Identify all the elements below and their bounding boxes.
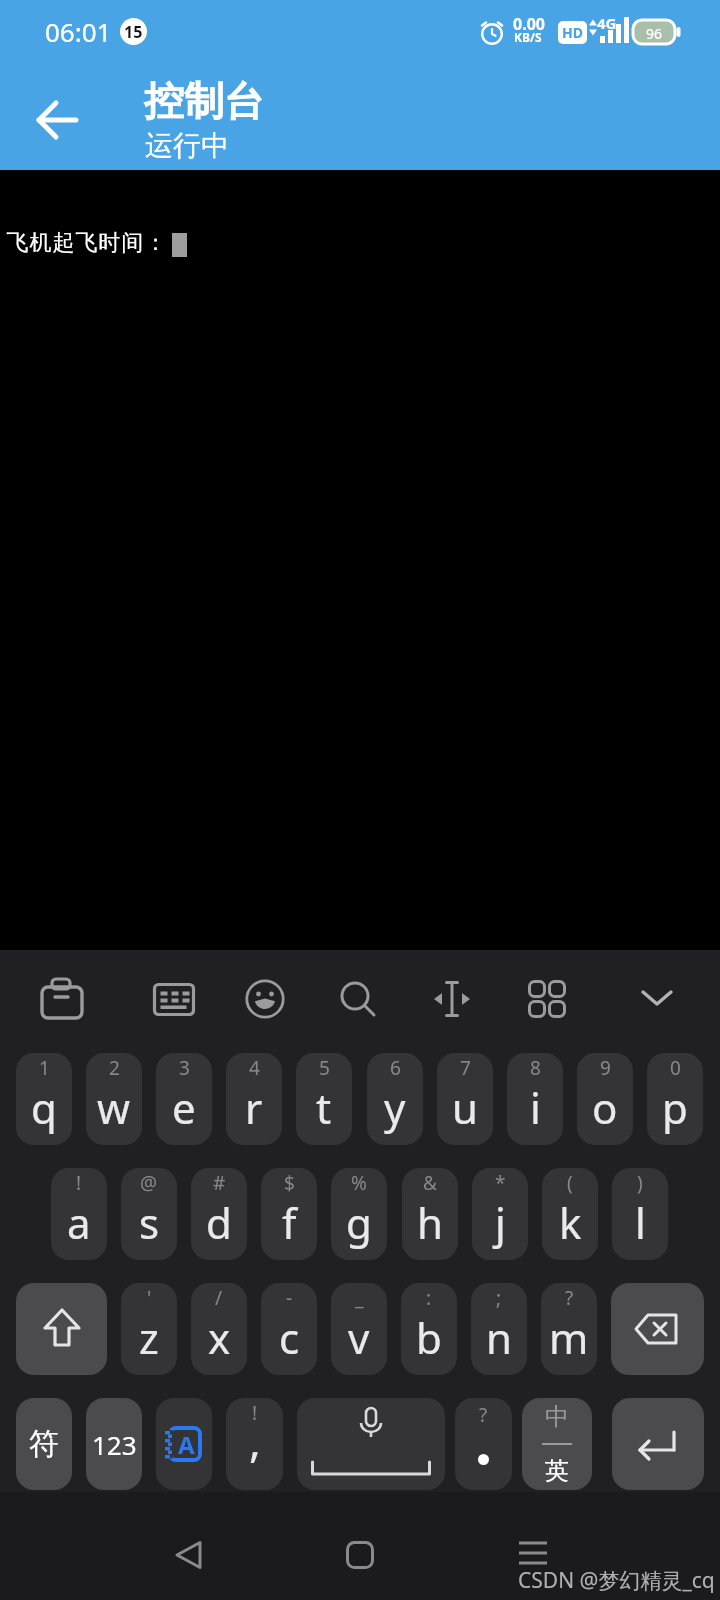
staticText: @ xyxy=(140,1170,158,1196)
staticText: u xyxy=(452,1079,478,1136)
staticText: 中 xyxy=(545,1402,569,1432)
staticText: c xyxy=(279,1309,300,1366)
button[interactable]: @ xyxy=(121,1168,177,1260)
button[interactable]: - xyxy=(261,1283,317,1375)
button[interactable]: / xyxy=(191,1283,247,1375)
button[interactable]: ! xyxy=(51,1168,107,1260)
staticText: HD xyxy=(562,23,583,42)
button[interactable]: A xyxy=(156,1398,212,1490)
staticText: 4G xyxy=(597,13,617,33)
button[interactable]: 8 xyxy=(507,1053,563,1145)
button[interactable] xyxy=(430,979,474,1019)
staticText: 控制台 xyxy=(144,76,264,126)
staticText: k xyxy=(559,1194,582,1251)
button[interactable] xyxy=(153,983,195,1017)
button[interactable]: 2 xyxy=(86,1053,142,1145)
staticText: l xyxy=(635,1194,646,1251)
staticText: 15 xyxy=(124,21,143,43)
staticText: x xyxy=(208,1309,231,1366)
staticText: ) xyxy=(637,1170,643,1196)
staticText: z xyxy=(139,1309,159,1366)
button[interactable]: 0 xyxy=(647,1053,703,1145)
staticText: 运行中 xyxy=(145,128,229,163)
button[interactable]: $ xyxy=(261,1168,317,1260)
staticText: 5 xyxy=(319,1055,330,1081)
button[interactable]: 6 xyxy=(367,1053,423,1145)
staticText: r xyxy=(245,1079,263,1136)
button[interactable] xyxy=(297,1398,445,1490)
staticText: g xyxy=(346,1194,372,1251)
staticText: ! xyxy=(76,1170,82,1196)
staticText: 6 xyxy=(390,1055,401,1081)
button[interactable] xyxy=(36,98,80,142)
button[interactable]: 符 xyxy=(16,1398,72,1490)
staticText: d xyxy=(206,1194,232,1251)
button[interactable] xyxy=(338,979,378,1019)
button[interactable] xyxy=(172,1540,206,1570)
button[interactable]: : xyxy=(401,1283,457,1375)
button[interactable]: 7 xyxy=(437,1053,493,1145)
staticText: n xyxy=(486,1309,512,1366)
button[interactable] xyxy=(346,1541,374,1569)
button[interactable]: 1 xyxy=(16,1053,72,1145)
staticText: , xyxy=(249,1410,261,1470)
button[interactable] xyxy=(611,1283,704,1375)
button[interactable] xyxy=(16,1283,107,1375)
staticText: ? xyxy=(479,1402,488,1428)
button[interactable]: ( xyxy=(542,1168,598,1260)
staticText: 9 xyxy=(600,1055,611,1081)
button[interactable] xyxy=(528,980,566,1018)
staticText: 3 xyxy=(179,1055,190,1081)
button[interactable] xyxy=(612,1398,704,1490)
button[interactable]: 123 xyxy=(86,1398,142,1490)
staticText: q xyxy=(31,1079,57,1136)
staticText: ( xyxy=(567,1170,573,1196)
staticText: _ xyxy=(355,1285,364,1311)
staticText: 英 xyxy=(545,1456,569,1486)
staticText: 8 xyxy=(530,1055,541,1081)
staticText: * xyxy=(495,1170,506,1196)
staticText: p xyxy=(662,1079,688,1136)
button[interactable]: * xyxy=(472,1168,528,1260)
staticText: s xyxy=(139,1194,160,1251)
button[interactable] xyxy=(518,1540,548,1566)
staticText: 123 xyxy=(92,1427,137,1462)
button[interactable]: 中 xyxy=(522,1398,592,1490)
staticText: ! xyxy=(252,1400,258,1426)
button[interactable]: ' xyxy=(121,1283,177,1375)
staticText: # xyxy=(213,1170,226,1196)
button[interactable] xyxy=(40,977,84,1021)
staticText: m xyxy=(549,1309,589,1366)
staticText: KB/S xyxy=(514,29,542,45)
button[interactable]: 3 xyxy=(156,1053,212,1145)
staticText: CSDN @梦幻精灵_cq xyxy=(518,1566,715,1595)
button[interactable]: ? xyxy=(455,1398,512,1490)
button[interactable]: # xyxy=(191,1168,247,1260)
staticText: h xyxy=(417,1194,443,1251)
button[interactable]: % xyxy=(331,1168,387,1260)
staticText: 飞机起飞时间： xyxy=(6,229,167,257)
button[interactable] xyxy=(641,989,673,1009)
staticText: 1 xyxy=(39,1055,50,1081)
staticText: 06:01 xyxy=(45,14,112,49)
staticText: b xyxy=(416,1309,442,1366)
staticText: $ xyxy=(284,1170,295,1196)
button[interactable]: ! xyxy=(226,1398,283,1490)
button[interactable]: 4 xyxy=(226,1053,282,1145)
staticText: 符 xyxy=(29,1425,59,1463)
button[interactable]: _ xyxy=(331,1283,387,1375)
staticText: 7 xyxy=(460,1055,471,1081)
button[interactable]: & xyxy=(402,1168,458,1260)
button[interactable]: ; xyxy=(471,1283,527,1375)
button[interactable]: ) xyxy=(612,1168,668,1260)
staticText: y xyxy=(384,1079,406,1136)
staticText: : xyxy=(426,1285,432,1311)
staticText: 96 xyxy=(633,24,675,44)
staticText: ; xyxy=(496,1285,502,1311)
staticText: 2 xyxy=(109,1055,120,1081)
button[interactable]: ? xyxy=(541,1283,597,1375)
button[interactable]: 9 xyxy=(577,1053,633,1145)
staticText: ' xyxy=(147,1285,152,1311)
button[interactable] xyxy=(245,979,285,1019)
button[interactable]: 5 xyxy=(296,1053,352,1145)
